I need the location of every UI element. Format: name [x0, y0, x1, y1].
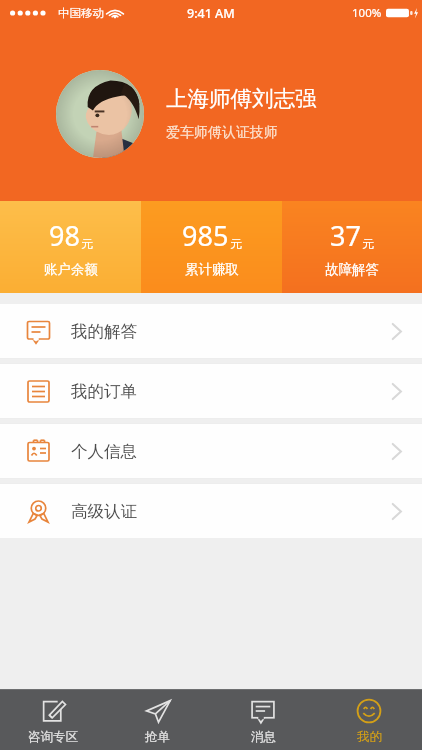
staticText: 上海师傅刘志强	[166, 85, 317, 112]
staticText: 我的	[357, 729, 382, 745]
staticText: 37	[330, 217, 361, 254]
button[interactable]: 上海师傅刘志强	[0, 26, 422, 201]
button[interactable]: 咨询专区	[0, 690, 105, 750]
staticText: 元	[362, 236, 374, 251]
staticText: 元	[230, 236, 242, 251]
button[interactable]: 我的解答	[0, 304, 422, 358]
button[interactable]: 个人信息	[0, 424, 422, 478]
staticText: 我的解答	[71, 321, 137, 342]
staticText: 累计赚取	[185, 261, 239, 278]
staticText: 消息	[251, 729, 276, 745]
staticText: 100%	[352, 5, 382, 21]
button[interactable]: 消息	[210, 690, 316, 750]
staticText: 故障解答	[325, 261, 379, 278]
button[interactable]: 98	[0, 201, 141, 293]
button[interactable]: 我的	[316, 690, 422, 750]
staticText: 个人信息	[71, 441, 137, 462]
staticText: 98	[49, 217, 80, 254]
staticText: 985	[182, 217, 229, 254]
staticText: 我的订单	[71, 381, 137, 402]
staticText: 爱车师傅认证技师	[166, 124, 278, 142]
button[interactable]: 我的订单	[0, 364, 422, 418]
staticText: 抢单	[145, 729, 170, 745]
staticText: 中国移动	[58, 6, 104, 20]
button[interactable]: 高级认证	[0, 484, 422, 538]
button[interactable]: 37	[282, 201, 422, 293]
staticText: 咨询专区	[28, 729, 78, 745]
button[interactable]: 985	[141, 201, 282, 293]
staticText: 高级认证	[71, 501, 137, 522]
button[interactable]: 抢单	[105, 690, 210, 750]
staticText: 9:41 AM	[187, 5, 235, 22]
staticText: 元	[81, 236, 93, 251]
staticText: 账户余额	[44, 261, 98, 278]
